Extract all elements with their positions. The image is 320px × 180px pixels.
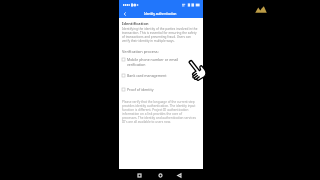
button[interactable]: Mobile phone number or email verificatio… xyxy=(122,57,184,67)
button[interactable]: Back xyxy=(122,11,128,17)
staticText: Proof of identity xyxy=(127,87,154,92)
button[interactable]: Proof of identity xyxy=(122,87,178,92)
button[interactable]: Home xyxy=(158,173,163,178)
staticText: Identity authentication xyxy=(144,12,177,16)
staticText: Verification process: xyxy=(122,49,159,54)
button[interactable]: Back xyxy=(177,173,182,178)
staticText: Bank card management xyxy=(127,73,167,78)
button[interactable]: Recent apps xyxy=(137,173,142,178)
staticText: Identifying the identity of the parties … xyxy=(122,27,198,43)
staticText: Please verify that the language of the c… xyxy=(122,100,198,124)
staticText: Identification xyxy=(122,21,149,26)
staticText: Mobile phone number or email verificatio… xyxy=(127,57,179,67)
button[interactable]: Bank card management xyxy=(122,73,178,78)
